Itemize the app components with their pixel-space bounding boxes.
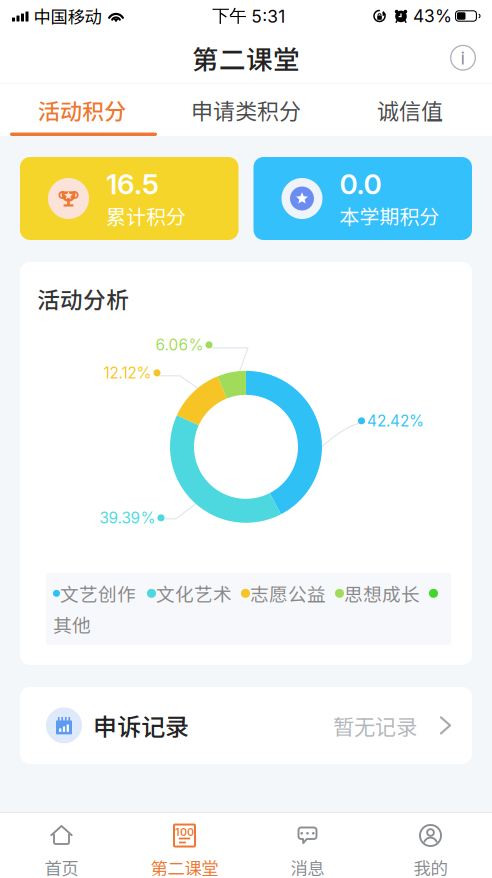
staticText: 志愿公益 (250, 580, 326, 607)
staticText: 申请类积分 (191, 94, 301, 126)
staticText: 中国移动 (33, 3, 101, 29)
staticText: 其他 (53, 611, 91, 638)
button[interactable]: 100 (123, 813, 246, 878)
staticText: 暂无记录 (333, 710, 417, 741)
staticText: 文艺创作 (60, 580, 136, 607)
staticText: 文化艺术 (156, 580, 232, 607)
staticText: 12.12% (103, 363, 151, 382)
button[interactable]: 消息 (246, 813, 369, 878)
staticText: 100 (175, 825, 194, 838)
button[interactable]: 首页 (0, 813, 123, 878)
button[interactable]: Info (441, 36, 485, 80)
staticText: 第二课堂 (192, 38, 300, 77)
staticText: 下午 5:31 (212, 5, 285, 27)
staticText: 消息 (290, 855, 324, 878)
button[interactable]: 活动积分 (0, 84, 164, 136)
staticText: 首页 (44, 855, 78, 878)
staticText: 43% (413, 5, 452, 26)
staticText: 本学期积分 (339, 201, 439, 230)
staticText: 6.06% (155, 335, 203, 354)
staticText: 活动积分 (38, 94, 126, 126)
staticText: 诚信值 (377, 94, 443, 126)
staticText: 我的 (413, 855, 447, 878)
staticText: 16.5 (106, 167, 159, 201)
staticText: 39.39% (99, 508, 155, 527)
staticText: 第二课堂 (150, 855, 218, 878)
button[interactable]: 我的 (369, 813, 492, 878)
staticText: 累计积分 (106, 201, 186, 230)
button[interactable]: 0.0 (253, 157, 472, 240)
button[interactable]: 诚信值 (328, 84, 492, 136)
staticText: 0.0 (339, 167, 381, 201)
staticText: 活动分析 (37, 282, 129, 315)
staticText: 思想成长 (344, 580, 420, 607)
staticText: 42.42% (367, 411, 424, 430)
button[interactable]: 申诉记录 (20, 687, 472, 764)
button[interactable]: 申请类积分 (164, 84, 328, 136)
staticText: i (460, 46, 465, 69)
button[interactable]: 16.5 (20, 157, 238, 240)
staticText: 申诉记录 (93, 708, 189, 743)
